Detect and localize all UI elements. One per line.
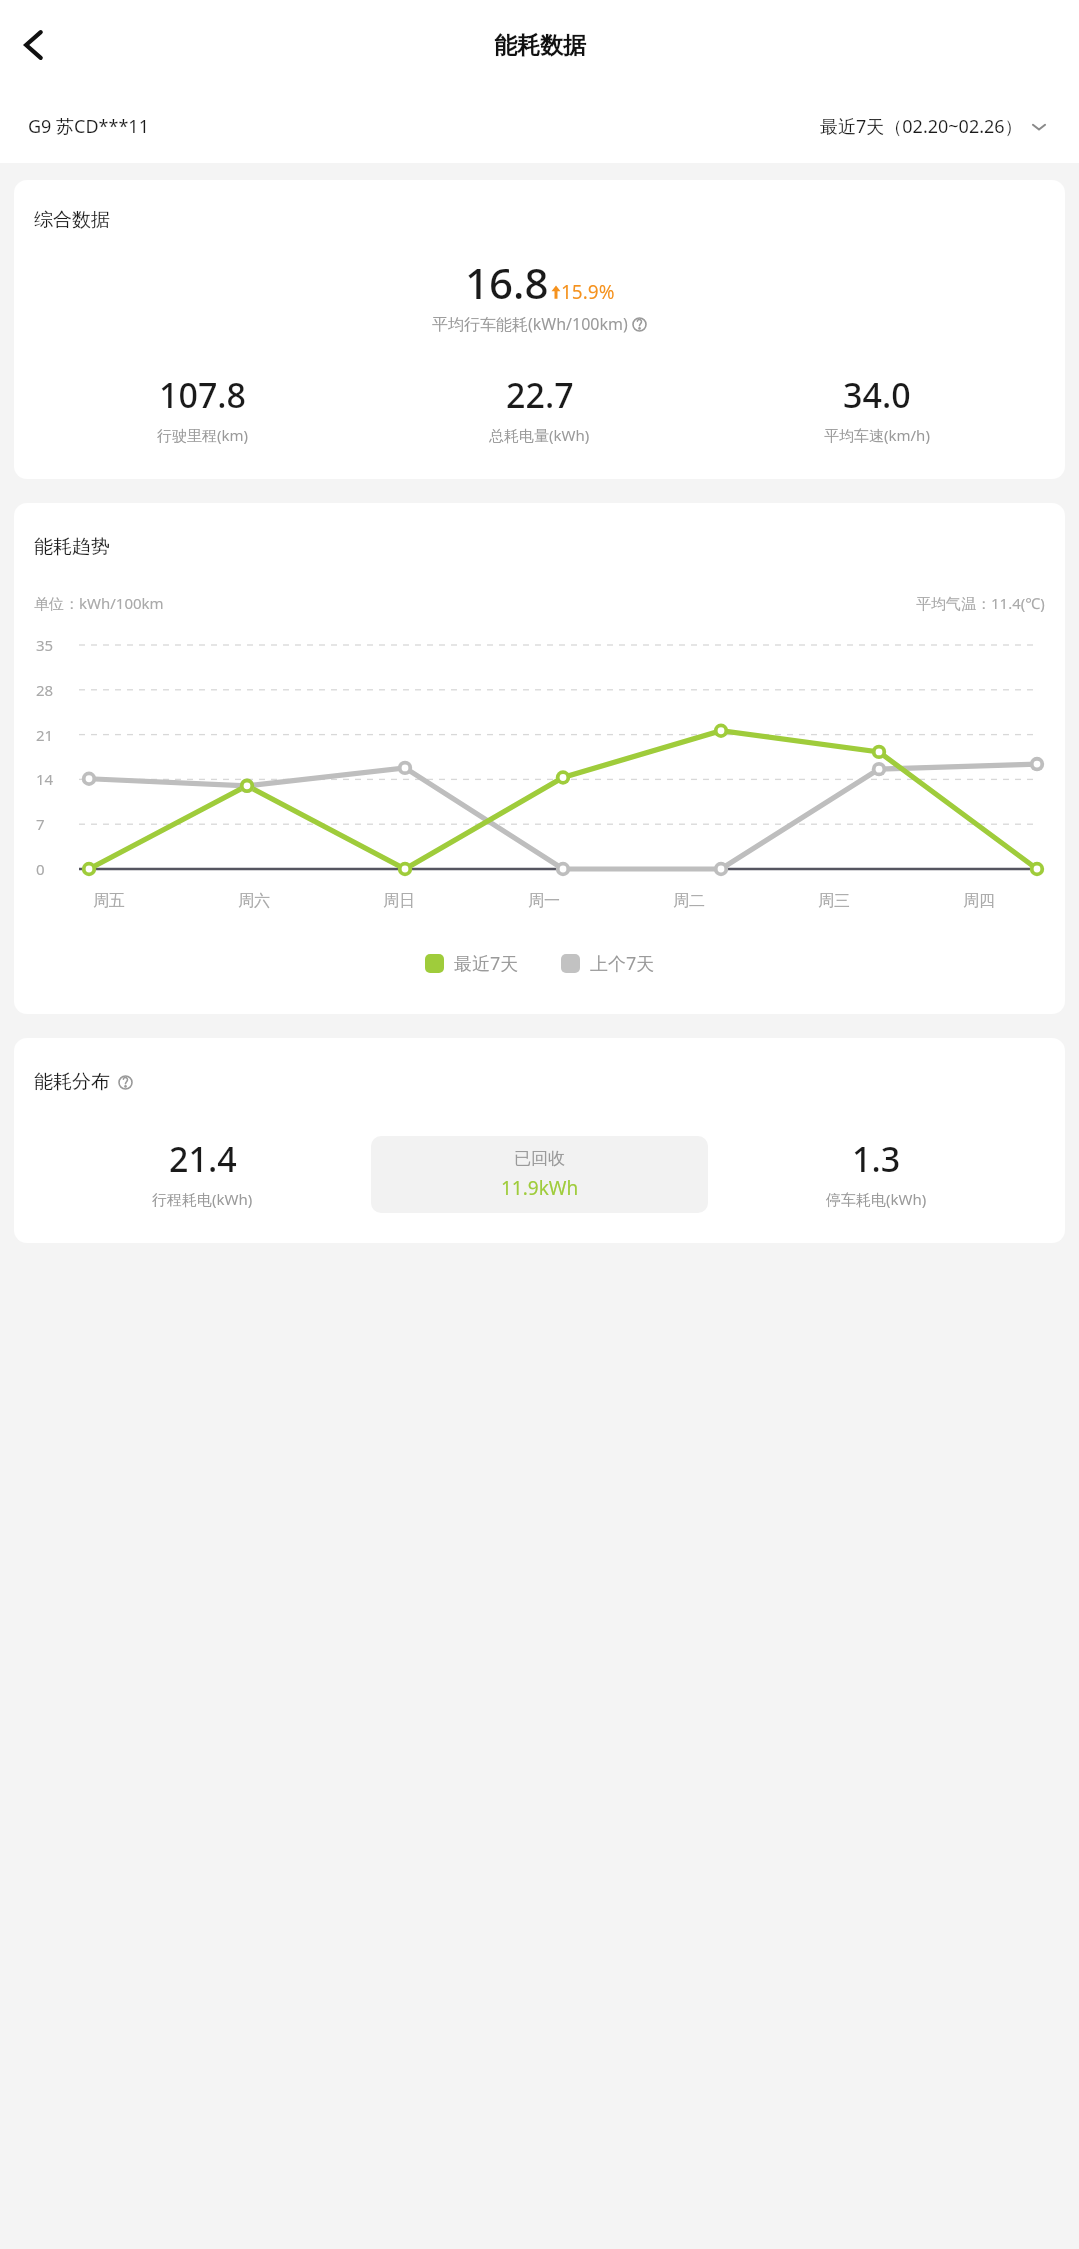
staticText: 周一	[528, 891, 560, 911]
staticText: 综合数据	[34, 208, 110, 232]
staticText: 周三	[818, 891, 850, 911]
staticText: 周日	[383, 891, 415, 911]
staticText: 行驶里程(km)	[157, 425, 249, 445]
button[interactable]: 最近7天（02.20~02.26）	[816, 110, 1051, 143]
staticText: 28	[36, 680, 54, 700]
staticText: 行程耗电(kWh)	[152, 1189, 253, 1209]
staticText: 能耗分布	[34, 1070, 110, 1094]
staticText: 最近7天（02.20~02.26）	[820, 114, 1023, 139]
staticText: 22.7	[506, 372, 574, 418]
staticText: 7	[36, 814, 45, 834]
staticText: 15.9%	[561, 279, 615, 305]
staticText: 周四	[963, 891, 995, 911]
staticText: 总耗电量(kWh)	[489, 425, 590, 445]
staticText: 11.9kWh	[501, 1175, 579, 1201]
staticText: 35	[36, 635, 54, 655]
staticText: 平均气温：11.4(℃)	[916, 593, 1045, 613]
staticText: 21.4	[169, 1136, 237, 1182]
staticText: 周二	[673, 891, 705, 911]
staticText: 周五	[93, 891, 125, 911]
staticText: 最近7天	[454, 951, 519, 976]
button[interactable]: 帮助	[118, 1075, 133, 1090]
staticText: 16.8	[465, 254, 549, 311]
staticText: 周六	[238, 891, 270, 911]
staticText: 34.0	[843, 372, 911, 418]
staticText: 107.8	[159, 372, 247, 418]
staticText: 平均行车能耗(kWh/100km)	[432, 313, 628, 335]
staticText: G9 苏CD***11	[28, 114, 149, 139]
staticText: 能耗数据	[494, 31, 586, 60]
staticText: 能耗趋势	[34, 535, 110, 559]
staticText: 单位：kWh/100km	[34, 593, 164, 613]
staticText: 1.3	[852, 1136, 901, 1182]
staticText: 21	[36, 725, 54, 745]
staticText: 停车耗电(kWh)	[826, 1189, 927, 1209]
button[interactable]: 帮助	[632, 317, 647, 332]
staticText: 平均车速(km/h)	[824, 425, 930, 445]
staticText: 已回收	[514, 1148, 565, 1169]
staticText: 14	[36, 769, 54, 789]
staticText: 上个7天	[590, 951, 655, 976]
button[interactable]: 最近7天	[421, 947, 523, 980]
button[interactable]: 上个7天	[557, 947, 659, 980]
button[interactable]: Back	[6, 17, 62, 73]
staticText: 0	[36, 859, 45, 879]
